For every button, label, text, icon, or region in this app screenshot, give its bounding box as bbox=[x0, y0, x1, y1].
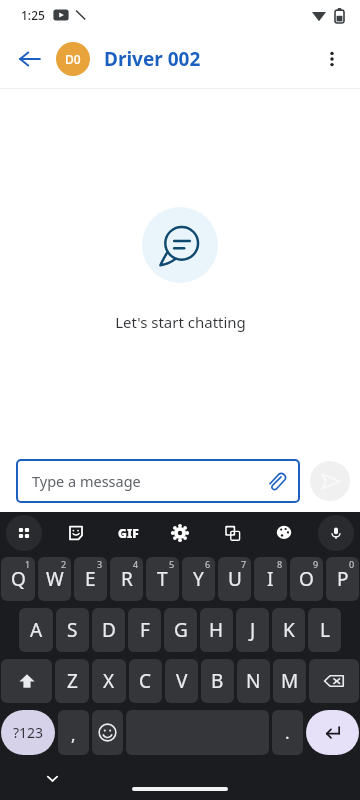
staticText: D0 bbox=[65, 51, 81, 67]
button[interactable]: Stickers bbox=[58, 515, 94, 551]
button[interactable]: O bbox=[290, 557, 323, 601]
button[interactable]: Back bbox=[8, 37, 52, 81]
button[interactable]: T bbox=[146, 557, 179, 601]
button[interactable]: N bbox=[237, 659, 270, 703]
staticText: 5 bbox=[169, 558, 175, 570]
button[interactable]: D bbox=[92, 608, 125, 652]
button[interactable]: Type a message bbox=[16, 459, 300, 503]
button[interactable]: Settings bbox=[162, 515, 198, 551]
button[interactable]: P bbox=[326, 557, 359, 601]
staticText: GIF bbox=[118, 525, 139, 541]
staticText: X bbox=[103, 668, 115, 694]
button[interactable]: D0 bbox=[56, 42, 90, 76]
button[interactable]: W bbox=[38, 557, 71, 601]
staticText: Z bbox=[67, 668, 78, 694]
staticText: 6 bbox=[205, 558, 211, 570]
staticText: N bbox=[246, 668, 261, 694]
button[interactable]: G bbox=[164, 608, 197, 652]
staticText: I bbox=[267, 566, 274, 592]
button[interactable]: Q bbox=[1, 557, 35, 601]
button[interactable]: K bbox=[272, 608, 305, 652]
button[interactable]: Emoji bbox=[92, 710, 123, 755]
staticText: , bbox=[71, 723, 76, 746]
button[interactable]: Z bbox=[55, 659, 89, 703]
staticText: D bbox=[102, 617, 116, 643]
staticText: S bbox=[67, 617, 78, 643]
button[interactable]: J bbox=[236, 608, 269, 652]
button[interactable]: C bbox=[129, 659, 162, 703]
staticText: T bbox=[157, 566, 168, 592]
staticText: 7 bbox=[241, 558, 247, 570]
staticText: O bbox=[299, 566, 314, 592]
staticText: M bbox=[281, 668, 299, 694]
button[interactable]: H bbox=[200, 608, 233, 652]
button[interactable]: M bbox=[273, 659, 306, 703]
staticText: C bbox=[139, 668, 152, 694]
button[interactable]: E bbox=[74, 557, 107, 601]
staticText: H bbox=[209, 617, 224, 643]
button[interactable]: V bbox=[165, 659, 198, 703]
staticText: U bbox=[228, 566, 242, 592]
staticText: E bbox=[85, 566, 96, 592]
staticText: L bbox=[320, 617, 330, 643]
staticText: Y bbox=[193, 566, 204, 592]
button[interactable]: , bbox=[58, 710, 89, 755]
staticText: 1 bbox=[25, 558, 31, 570]
button[interactable]: L bbox=[308, 608, 341, 652]
button[interactable]: ?123 bbox=[1, 710, 55, 755]
staticText: Q bbox=[11, 566, 26, 592]
staticText: ?123 bbox=[13, 723, 44, 742]
button[interactable]: Voice input bbox=[318, 515, 354, 551]
button[interactable]: . bbox=[272, 710, 303, 755]
button[interactable]: Backspace bbox=[309, 659, 359, 703]
button[interactable]: R bbox=[110, 557, 143, 601]
button[interactable]: Y bbox=[182, 557, 215, 601]
staticText: V bbox=[176, 668, 188, 694]
button[interactable]: U bbox=[218, 557, 251, 601]
button[interactable]: I bbox=[254, 557, 287, 601]
button[interactable]: F bbox=[128, 608, 161, 652]
staticText: 9 bbox=[313, 558, 319, 570]
button[interactable]: Driver 002 bbox=[104, 46, 201, 72]
staticText: J bbox=[250, 617, 256, 643]
button[interactable]: GIF bbox=[110, 515, 146, 551]
staticText: G bbox=[174, 617, 188, 643]
button[interactable]: More options bbox=[310, 37, 354, 81]
button[interactable]: Shift bbox=[1, 659, 52, 703]
staticText: 2 bbox=[61, 558, 67, 570]
staticText: B bbox=[211, 668, 224, 694]
button[interactable]: Themes bbox=[266, 515, 302, 551]
staticText: Type a message bbox=[32, 471, 264, 491]
staticText: A bbox=[30, 617, 43, 643]
staticText: 0 bbox=[349, 558, 355, 570]
staticText: R bbox=[121, 566, 133, 592]
staticText: F bbox=[140, 617, 150, 643]
button[interactable]: Send bbox=[310, 461, 350, 501]
staticText: . bbox=[285, 721, 290, 744]
staticText: 3 bbox=[97, 558, 103, 570]
button[interactable]: Hide keyboard bbox=[38, 764, 66, 792]
button[interactable]: Apps bbox=[6, 515, 42, 551]
button[interactable]: Translate bbox=[214, 515, 250, 551]
button[interactable]: Attach file bbox=[264, 469, 288, 493]
staticText: P bbox=[337, 566, 349, 592]
button[interactable]: A bbox=[19, 608, 53, 652]
staticText: 8 bbox=[277, 558, 283, 570]
button[interactable]: X bbox=[92, 659, 126, 703]
staticText: W bbox=[46, 566, 64, 592]
staticText: K bbox=[283, 617, 295, 643]
button[interactable]: S bbox=[56, 608, 89, 652]
button[interactable]: Enter bbox=[306, 710, 359, 755]
staticText: 1:25 bbox=[21, 7, 45, 23]
staticText: 4 bbox=[133, 558, 139, 570]
button[interactable]: B bbox=[201, 659, 234, 703]
staticText: Let's start chatting bbox=[115, 312, 246, 332]
